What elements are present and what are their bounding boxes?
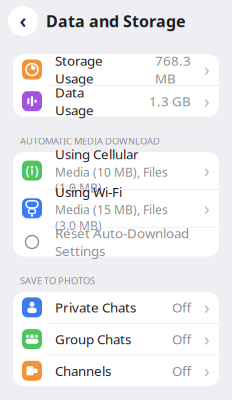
button[interactable]: Reset Auto-Download Settings [13, 227, 219, 256]
staticText: SAVE TO PHOTOS [20, 274, 95, 287]
staticText: Media (15 MB), Files (3.0 MB) [55, 202, 168, 234]
staticText: ‹ [19, 7, 26, 34]
staticText: › [204, 197, 210, 220]
staticText: Using Wi-Fi [55, 183, 122, 201]
staticText: Reset Auto-Download Settings [55, 224, 189, 260]
staticText: ( [25, 163, 29, 178]
staticText: › [204, 58, 210, 81]
button[interactable]: Storage Usage [13, 54, 219, 85]
staticText: Private Chats [55, 298, 136, 316]
staticText: › [204, 159, 210, 182]
button[interactable]: ( [13, 152, 219, 189]
button[interactable]: Back [8, 6, 38, 36]
button[interactable]: Group Chats [13, 324, 219, 355]
staticText: 1.3 GB [149, 92, 191, 110]
staticText: 768.3 MB [155, 52, 191, 87]
staticText: Off [172, 298, 191, 316]
staticText: Storage Usage [55, 52, 103, 87]
staticText: AUTOMATIC MEDIA DOWNLOAD [20, 135, 160, 147]
staticText: Data and Storage [46, 10, 186, 32]
button[interactable]: Private Chats [13, 292, 219, 323]
staticText: Group Chats [55, 330, 131, 348]
staticText: Media (10 MB), Files (1.0 MB) [55, 164, 168, 196]
staticText: Channels [55, 362, 111, 380]
button[interactable]: Using Wi-Fi [13, 190, 219, 227]
staticText: › [204, 90, 210, 113]
staticText: › [204, 359, 210, 382]
staticText: Off [172, 362, 191, 380]
staticText: ) [34, 163, 38, 178]
staticText: › [204, 328, 210, 351]
staticText: › [204, 296, 210, 319]
button[interactable]: Channels [13, 355, 219, 386]
staticText: Using Cellular [55, 145, 139, 163]
staticText: Data Usage [55, 83, 94, 119]
staticText: Off [172, 330, 191, 348]
button[interactable]: Data Usage [13, 86, 219, 117]
